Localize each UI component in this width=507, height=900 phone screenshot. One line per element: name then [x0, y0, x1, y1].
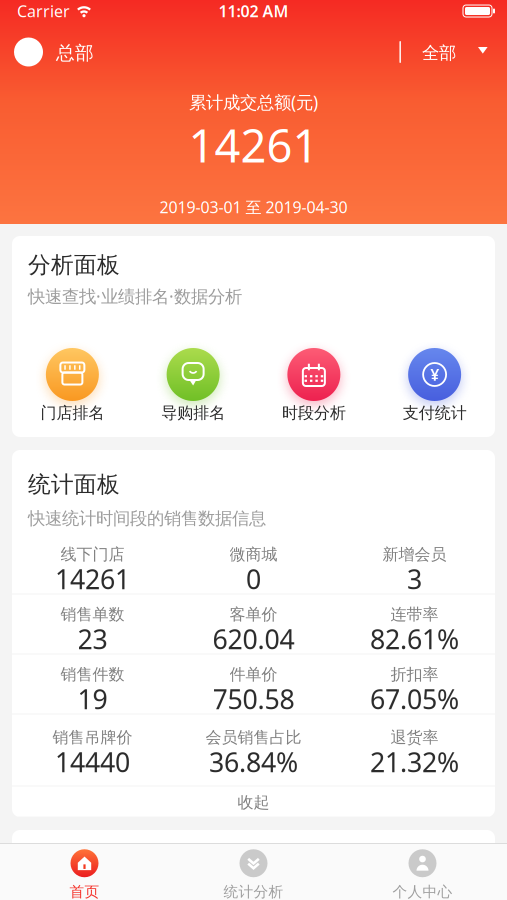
staticText: 快速统计时间段的销售数据信息: [28, 508, 266, 529]
staticText: 36.84%: [209, 744, 298, 780]
button[interactable]: 导购排名: [133, 348, 254, 423]
staticText: 2019-03-01 至 2019-04-30: [159, 196, 347, 218]
staticText: 支付统计: [403, 403, 467, 423]
staticText: 14261: [55, 561, 130, 597]
staticText: 统计面板: [28, 471, 120, 498]
staticText: 销售吊牌价: [52, 728, 132, 747]
staticText: 11:02 AM: [218, 0, 288, 22]
button[interactable]: 首页: [0, 849, 169, 900]
staticText: 新增会员: [382, 545, 446, 564]
staticText: ¥: [430, 364, 439, 385]
staticText: 23: [77, 621, 107, 657]
button[interactable]: ¥: [374, 348, 495, 423]
staticText: 全部: [422, 42, 456, 64]
staticText: 收起: [237, 793, 269, 812]
button[interactable]: 门店排名: [12, 348, 133, 423]
staticText: 退货率: [390, 728, 438, 747]
staticText: 快速查找·业绩排名·数据分析: [28, 284, 242, 307]
staticText: 总部: [56, 41, 94, 64]
button[interactable]: 总部: [14, 37, 94, 66]
staticText: 3: [407, 561, 422, 597]
staticText: 销售件数: [60, 665, 124, 684]
staticText: 14261: [188, 115, 318, 175]
staticText: 分析面板: [28, 251, 120, 279]
staticText: 客单价: [229, 605, 277, 624]
staticText: 67.05%: [370, 681, 459, 717]
staticText: 累计成交总额(元): [189, 90, 318, 113]
staticText: 19: [77, 681, 107, 717]
button[interactable]: 收起: [12, 786, 495, 817]
staticText: 折扣率: [390, 665, 438, 684]
staticText: 21.32%: [370, 744, 459, 780]
staticText: 线下门店: [60, 545, 124, 564]
button[interactable]: 个人中心: [338, 849, 507, 900]
staticText: 14440: [55, 744, 130, 780]
staticText: 82.61%: [370, 621, 459, 657]
button[interactable]: 统计分析: [169, 849, 338, 900]
staticText: 门店排名: [40, 403, 104, 423]
staticText: 连带率: [390, 605, 438, 624]
staticText: 首页: [69, 883, 99, 900]
staticText: 销售单数: [60, 605, 124, 624]
staticText: 0: [246, 561, 261, 597]
button[interactable]: 时段分析: [253, 348, 374, 423]
staticText: 会员销售占比: [205, 728, 301, 747]
staticText: 导购排名: [161, 403, 225, 423]
staticText: 时段分析: [282, 403, 346, 423]
button[interactable]: 全部: [399, 41, 488, 63]
staticText: 微商城: [229, 545, 277, 564]
staticText: 件单价: [229, 665, 277, 684]
staticText: 620.04: [212, 621, 294, 657]
staticText: 750.58: [212, 681, 294, 717]
staticText: 个人中心: [392, 883, 452, 900]
staticText: Carrier: [17, 0, 70, 22]
staticText: 统计分析: [223, 883, 283, 900]
